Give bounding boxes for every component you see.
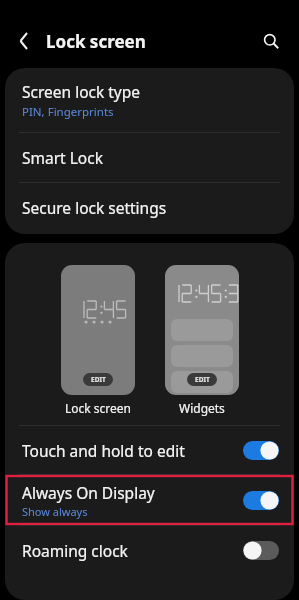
staticText: Screen lock type	[22, 81, 141, 102]
button[interactable]: Touch and hold to edit	[5, 426, 294, 474]
button[interactable]: Toggle on	[243, 441, 279, 460]
staticText: EDIT	[91, 375, 106, 384]
button[interactable]: EDIT	[83, 373, 113, 386]
staticText: Show always	[22, 504, 88, 519]
button[interactable]: Secure lock settings	[5, 183, 294, 232]
button[interactable]: Toggle on	[243, 491, 279, 510]
button[interactable]: EDIT	[165, 265, 239, 395]
staticText: Secure lock settings	[22, 197, 167, 218]
button[interactable]: Back	[8, 25, 40, 57]
button[interactable]: Search	[256, 26, 286, 56]
button[interactable]: EDIT	[61, 265, 135, 395]
staticText: PIN, Fingerprints	[22, 104, 114, 120]
staticText: Roaming clock	[22, 540, 128, 561]
staticText: Widgets	[179, 400, 225, 416]
staticText: Lock screen	[46, 30, 146, 53]
staticText: Touch and hold to edit	[22, 440, 185, 461]
button[interactable]: Screen lock type	[5, 68, 294, 132]
staticText: EDIT	[195, 375, 210, 384]
staticText: Lock screen	[65, 400, 132, 416]
button[interactable]: Roaming clock	[5, 526, 294, 574]
staticText: Smart Lock	[22, 147, 103, 168]
button[interactable]: Always On Display	[5, 475, 294, 525]
staticText: Always On Display	[22, 482, 155, 503]
button[interactable]: EDIT	[187, 373, 217, 386]
button[interactable]: Toggle off	[243, 541, 279, 560]
button[interactable]: Smart Lock	[5, 133, 294, 182]
